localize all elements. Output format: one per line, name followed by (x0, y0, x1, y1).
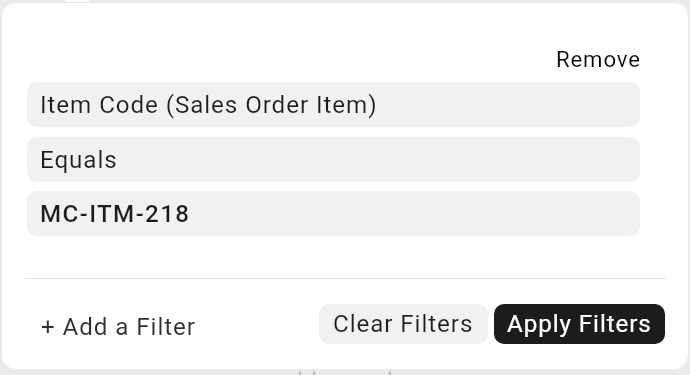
button[interactable]: Remove (542, 38, 655, 80)
staticText: Apply Filters (507, 310, 652, 338)
button[interactable]: + Add a Filter (27, 304, 210, 350)
button[interactable]: Clear Filters (319, 304, 488, 344)
staticText: MC-ITM-218 (40, 200, 191, 228)
staticText: Clear Filters (333, 310, 474, 338)
button[interactable]: Apply Filters (494, 304, 665, 344)
staticText: Equals (40, 146, 118, 174)
staticText: Remove (556, 46, 641, 72)
button[interactable]: Item Code (Sales Order Item) (27, 82, 640, 127)
staticText: Item Code (Sales Order Item) (40, 91, 378, 119)
staticText: + Add a Filter (41, 313, 196, 341)
button[interactable]: Equals (27, 137, 640, 182)
button[interactable]: MC-ITM-218 (27, 191, 640, 236)
